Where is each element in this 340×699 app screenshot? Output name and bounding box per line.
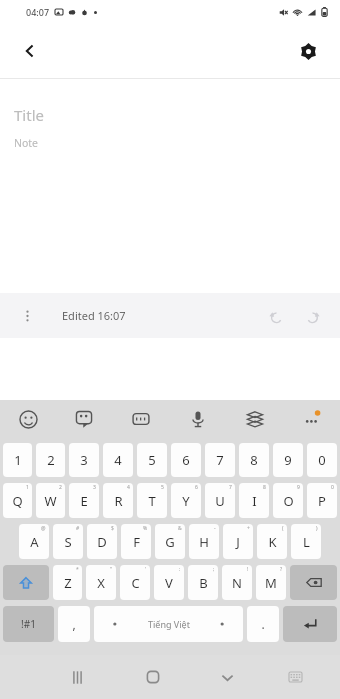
button[interactable]: X: [86, 565, 116, 600]
staticText: W: [44, 492, 57, 510]
button[interactable]: Keyboard modes: [226, 400, 283, 438]
button[interactable]: Backspace: [290, 565, 337, 600]
staticText: $: [111, 525, 114, 532]
button[interactable]: Shift: [3, 565, 49, 600]
button[interactable]: S: [53, 524, 83, 559]
staticText: 7: [216, 451, 224, 469]
staticText: O: [283, 492, 294, 510]
staticText: M: [265, 574, 277, 592]
button[interactable]: O: [273, 483, 303, 518]
button[interactable]: Enter: [283, 606, 337, 642]
staticText: B: [199, 574, 208, 592]
button[interactable]: Space: [94, 606, 243, 642]
staticText: 9: [297, 484, 300, 491]
staticText: &: [178, 525, 182, 532]
button[interactable]: W: [36, 483, 65, 518]
button[interactable]: 5: [137, 443, 167, 477]
button[interactable]: N: [222, 565, 252, 600]
button[interactable]: 9: [273, 443, 303, 477]
staticText: %: [143, 525, 148, 532]
button[interactable]: More options: [14, 303, 40, 329]
button[interactable]: K: [257, 524, 287, 559]
button[interactable]: Emoji: [0, 400, 56, 438]
staticText: !: [247, 566, 249, 573]
button[interactable]: Q: [3, 483, 32, 518]
staticText: U: [215, 492, 225, 510]
button[interactable]: 4: [103, 443, 133, 477]
button[interactable]: !#1: [3, 606, 54, 642]
button[interactable]: 8: [239, 443, 269, 477]
staticText: 3: [93, 484, 96, 491]
staticText: .: [261, 616, 265, 632]
button[interactable]: Y: [171, 483, 201, 518]
button[interactable]: Change keyboard: [265, 655, 325, 699]
button[interactable]: Recent apps: [40, 655, 115, 699]
staticText: ": [110, 566, 113, 573]
staticText: E: [80, 492, 88, 510]
staticText: V: [165, 574, 173, 592]
button[interactable]: U: [205, 483, 235, 518]
button[interactable]: I: [239, 483, 269, 518]
staticText: S: [64, 533, 72, 551]
button[interactable]: 0: [307, 443, 337, 477]
button[interactable]: Z: [53, 565, 82, 600]
button[interactable]: Back: [8, 29, 52, 73]
button[interactable]: C: [120, 565, 150, 600]
button[interactable]: L: [291, 524, 321, 559]
button[interactable]: ,: [58, 606, 90, 642]
button[interactable]: Stickers: [56, 400, 112, 438]
button[interactable]: R: [103, 483, 133, 518]
button[interactable]: 6: [171, 443, 201, 477]
button[interactable]: Redo: [298, 302, 326, 330]
staticText: 7: [229, 484, 232, 491]
staticText: H: [199, 533, 209, 551]
button[interactable]: Hide keyboard: [190, 655, 265, 699]
button[interactable]: 3: [69, 443, 99, 477]
button[interactable]: P: [307, 483, 337, 518]
staticText: L: [303, 533, 310, 551]
staticText: @: [41, 525, 46, 532]
button[interactable]: 1: [3, 443, 32, 477]
button[interactable]: G: [155, 524, 185, 559]
button[interactable]: .: [247, 606, 279, 642]
button[interactable]: J: [223, 524, 253, 559]
button[interactable]: D: [87, 524, 117, 559]
staticText: I: [252, 492, 257, 510]
staticText: ,: [72, 616, 76, 632]
staticText: !#1: [21, 617, 36, 631]
button[interactable]: M: [256, 565, 286, 600]
button[interactable]: V: [154, 565, 184, 600]
button[interactable]: 7: [205, 443, 235, 477]
staticText: 0: [331, 484, 334, 491]
staticText: ): [316, 525, 318, 532]
button[interactable]: F: [121, 524, 151, 559]
staticText: 6: [195, 484, 198, 491]
button[interactable]: Settings: [286, 29, 330, 73]
staticText: A: [30, 533, 39, 551]
button[interactable]: Undo: [262, 302, 290, 330]
button[interactable]: More: [283, 400, 340, 438]
button[interactable]: E: [69, 483, 99, 518]
staticText: R: [114, 492, 123, 510]
button[interactable]: B: [188, 565, 218, 600]
button[interactable]: 2: [36, 443, 65, 477]
staticText: ': [145, 566, 147, 573]
button[interactable]: H: [189, 524, 219, 559]
staticText: 4: [127, 484, 130, 491]
staticText: Edited 16:07: [62, 308, 126, 323]
button[interactable]: Voice input: [169, 400, 226, 438]
staticText: 6: [182, 451, 190, 469]
staticText: T: [148, 492, 156, 510]
staticText: 8: [263, 484, 266, 491]
button[interactable]: T: [137, 483, 167, 518]
staticText: 3: [80, 451, 88, 469]
staticText: ?: [280, 566, 283, 573]
staticText: 1: [26, 484, 29, 491]
staticText: C: [131, 574, 140, 592]
staticText: D: [97, 533, 107, 551]
staticText: J: [236, 533, 240, 551]
button[interactable]: GIF: [112, 400, 169, 438]
button[interactable]: Home: [115, 655, 190, 699]
staticText: (: [282, 525, 284, 532]
button[interactable]: A: [19, 524, 49, 559]
